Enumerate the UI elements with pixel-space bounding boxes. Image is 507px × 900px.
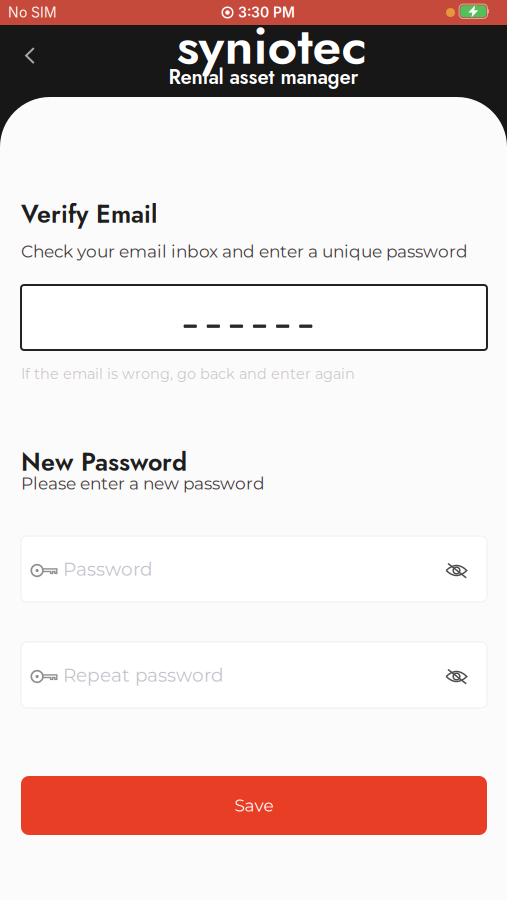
staticText: syniotec — [176, 8, 366, 83]
staticText: Please enter a new password — [21, 473, 265, 494]
button[interactable]: Back — [0, 0, 46, 74]
staticText: Rental asset manager — [168, 62, 358, 92]
button[interactable]: Save — [21, 776, 487, 835]
staticText: Save — [234, 795, 273, 816]
staticText: 3:30 PM — [238, 4, 295, 21]
button[interactable]: Verification code — [21, 285, 487, 350]
staticText: Check your email inbox and enter a uniqu… — [21, 241, 468, 262]
button[interactable]: Password — [21, 536, 487, 602]
staticText: Repeat password — [63, 664, 224, 686]
staticText: No SIM — [8, 4, 57, 21]
button[interactable]: Show Password — [445, 560, 487, 577]
staticText: If the email is wrong, go back and enter… — [21, 365, 355, 383]
staticText: Verify Email — [21, 196, 157, 232]
button[interactable]: Show Repeat password — [445, 666, 487, 683]
staticText: Password — [63, 558, 153, 580]
button[interactable]: Repeat password — [21, 642, 487, 708]
staticText: New Password — [21, 444, 187, 480]
